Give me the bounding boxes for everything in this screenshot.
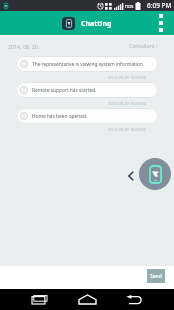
staticText: nos (125, 3, 134, 10)
staticText: 2014-08-20 10:39:06 (108, 101, 146, 106)
staticText: Home has been opened. (32, 113, 88, 120)
staticText: 2014-08-20 10:39:06 (108, 127, 146, 132)
button[interactable]: Remote device (139, 158, 171, 190)
button[interactable]: Recents (30, 289, 49, 310)
button[interactable]: Back (124, 289, 143, 310)
button[interactable]: Send (147, 269, 165, 283)
staticText: 6:09 PM (147, 1, 172, 10)
staticText: Remote support has started. (32, 87, 97, 94)
button[interactable]: Collapse (125, 166, 137, 185)
staticText: Chatting (81, 19, 112, 29)
staticText: Consultant : (129, 43, 158, 50)
button[interactable]: More options (155, 13, 167, 33)
button[interactable]: Home has been opened. (16, 108, 158, 124)
staticText: 2014. 08. 20. (8, 43, 40, 50)
button[interactable]: The representative is viewing system inf… (16, 56, 158, 72)
staticText: The representative is viewing system inf… (32, 61, 144, 68)
button[interactable]: Home (77, 289, 97, 310)
staticText: Send (150, 273, 162, 280)
staticText: 2014-08-20 10:39:06 (108, 75, 146, 80)
button[interactable]: Remote support has started. (16, 82, 158, 98)
